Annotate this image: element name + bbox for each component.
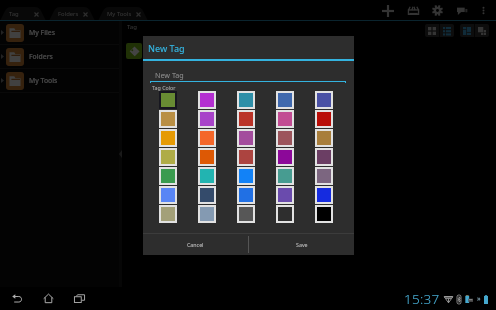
staticText: New Tag: [148, 42, 185, 54]
staticText: Tag: [127, 23, 137, 31]
staticText: New Tag: [155, 70, 184, 80]
button[interactable]: View mode: [425, 24, 439, 37]
button[interactable]: Folders: [0, 45, 119, 68]
staticText: Tag: [9, 10, 19, 18]
button[interactable]: My Tools: [98, 7, 148, 21]
button[interactable]: View mode: [460, 24, 474, 37]
staticText: Folders: [58, 10, 79, 18]
button[interactable]: Add new: [375, 0, 401, 21]
button[interactable]: My Tools: [0, 69, 119, 92]
button[interactable]: Home: [33, 287, 64, 310]
button[interactable]: Settings: [425, 0, 450, 21]
staticText: Folders: [29, 52, 53, 61]
button[interactable]: Tag: [0, 7, 46, 21]
button[interactable]: Messages: [450, 0, 474, 21]
button[interactable]: Recent apps: [64, 287, 95, 310]
button[interactable]: View mode: [475, 24, 489, 37]
staticText: Cancel: [187, 241, 204, 248]
button[interactable]: Cancel: [143, 234, 248, 255]
staticText: My Tools: [107, 10, 132, 18]
button[interactable]: Folders: [49, 7, 95, 21]
button[interactable]: Archive: [401, 0, 425, 21]
button[interactable]: Back: [2, 287, 33, 310]
button[interactable]: My Files: [0, 21, 119, 44]
button[interactable]: Tag item: [126, 43, 142, 59]
staticText: Tag Color: [152, 84, 176, 91]
button[interactable]: View mode: [440, 24, 454, 37]
staticText: Save: [296, 241, 308, 248]
staticText: »: [477, 294, 481, 304]
staticText: 15:37: [404, 290, 440, 308]
button[interactable]: Save: [249, 234, 354, 255]
staticText: My Files: [29, 28, 56, 37]
staticText: My Tools: [29, 76, 58, 85]
button[interactable]: More options: [474, 0, 493, 21]
